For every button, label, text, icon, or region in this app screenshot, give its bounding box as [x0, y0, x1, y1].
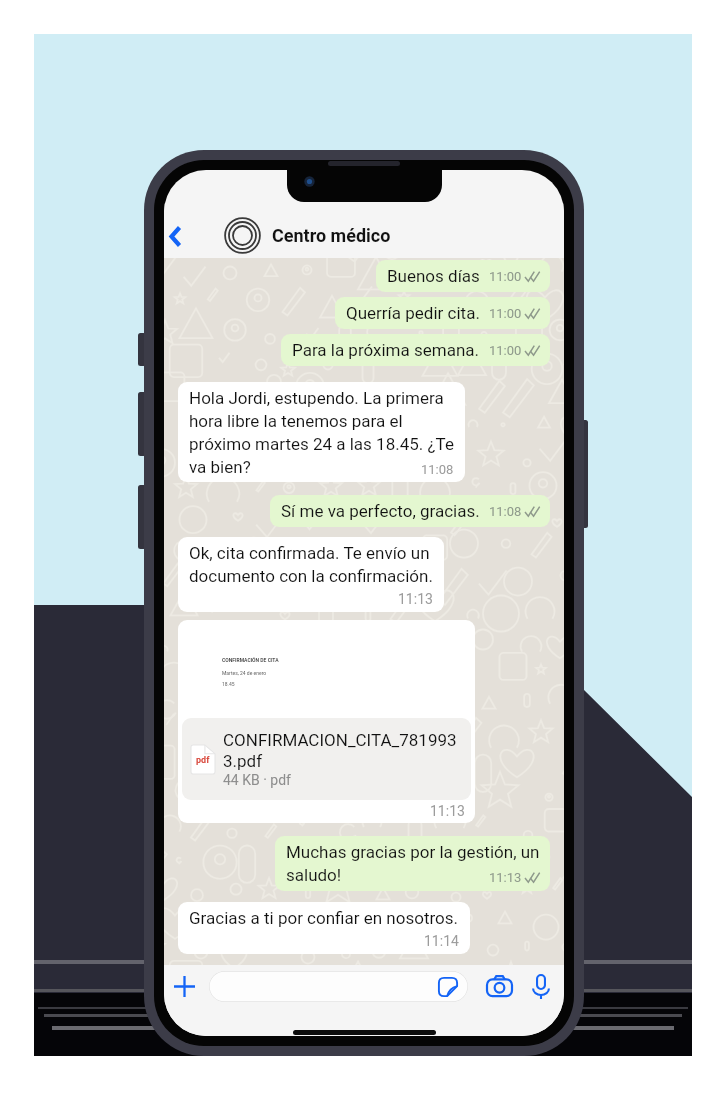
staticText: Martes, 24 de enero [222, 670, 267, 676]
staticText: 11:08 [489, 504, 522, 519]
staticText: pdf [196, 755, 210, 766]
button[interactable]: Buenos días [376, 260, 550, 292]
button[interactable]: Attach [166, 965, 202, 1007]
staticText: Muchas gracias por la gestión, un saludo… [286, 842, 540, 885]
button[interactable]: Para la próxima semana. [281, 334, 550, 366]
button[interactable]: Voice message [525, 965, 557, 1007]
button[interactable]: Stickers [209, 971, 468, 1002]
staticText: Hola Jordi, estupendo. La primera hora l… [189, 388, 454, 477]
staticText: 11:00 [489, 306, 522, 321]
staticText: Querría pedir cita. [346, 303, 480, 323]
button[interactable]: CONFIRMACIÓN DE CITA [178, 620, 475, 823]
staticText: 11:13 [430, 803, 465, 819]
button[interactable]: Querría pedir cita. [335, 297, 550, 329]
staticText: CONFIRMACIÓN DE CITA [222, 657, 279, 663]
staticText: 11:14 [424, 933, 459, 949]
button[interactable]: Ok, cita confirmada. Te envío un documen… [178, 537, 444, 612]
button[interactable]: Gracias a ti por confiar en nosotros. [178, 902, 470, 954]
staticText: Para la próxima semana. [292, 340, 480, 360]
staticText: Centro médico [272, 225, 391, 246]
staticText: 11:13 [489, 870, 522, 885]
button[interactable]: Muchas gracias por la gestión, un saludo… [275, 836, 550, 891]
staticText: 11:13 [398, 591, 433, 607]
button[interactable]: Stickers [438, 977, 458, 997]
button[interactable]: Sí me va perfecto, gracias. [270, 495, 550, 527]
staticText: 18.45 [222, 681, 235, 687]
button[interactable]: Hola Jordi, estupendo. La primera hora l… [178, 382, 465, 482]
button[interactable]: Back [164, 216, 190, 256]
staticText: Sí me va perfecto, gracias. [281, 501, 480, 521]
staticText: Buenos días [387, 266, 480, 286]
staticText: 11:00 [489, 269, 522, 284]
staticText: 11:00 [489, 343, 522, 358]
staticText: 11:08 [421, 462, 454, 477]
button[interactable]: Camera [481, 965, 517, 1007]
staticText: Ok, cita confirmada. Te envío un documen… [189, 543, 433, 586]
staticText: CONFIRMACION_CITA_781993 3.pdf [223, 730, 457, 772]
staticText: 44 KB · pdf [223, 772, 291, 788]
staticText: Gracias a ti por confiar en nosotros. [189, 908, 459, 928]
